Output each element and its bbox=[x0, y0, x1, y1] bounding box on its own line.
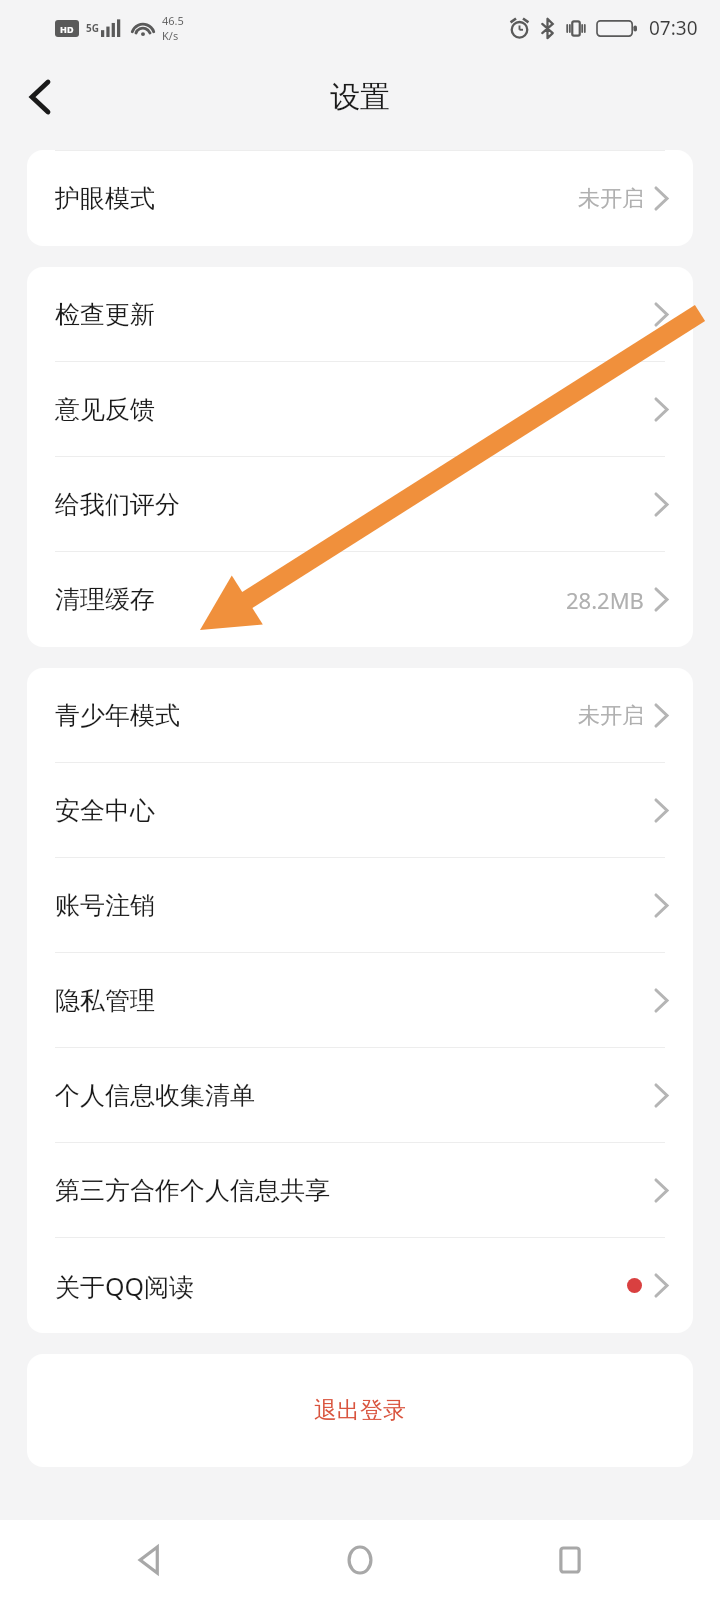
staticText: 给我们评分 bbox=[55, 489, 180, 520]
button[interactable]: 安全中心 bbox=[27, 763, 693, 858]
staticText: K/s bbox=[162, 28, 179, 43]
staticText: 28.2MB bbox=[566, 585, 644, 615]
button[interactable]: 意见反馈 bbox=[27, 362, 693, 457]
button[interactable]: 给我们评分 bbox=[27, 457, 693, 552]
button[interactable]: Home bbox=[330, 1530, 390, 1590]
staticText: 46.5 bbox=[162, 13, 184, 28]
button[interactable]: Back bbox=[8, 65, 72, 129]
button[interactable]: 退出登录 bbox=[27, 1354, 693, 1467]
button[interactable]: Back bbox=[120, 1530, 180, 1590]
staticText: 护眼模式 bbox=[55, 183, 155, 214]
staticText: 隐私管理 bbox=[55, 985, 155, 1016]
button[interactable]: 隐私管理 bbox=[27, 953, 693, 1048]
button[interactable]: 青少年模式 bbox=[27, 668, 693, 763]
staticText: 5G bbox=[86, 21, 99, 35]
staticText: 未开启 bbox=[578, 185, 644, 213]
button[interactable]: 个人信息收集清单 bbox=[27, 1048, 693, 1143]
button[interactable]: 关于QQ阅读 bbox=[27, 1238, 693, 1333]
button[interactable]: 护眼模式 bbox=[27, 151, 693, 246]
staticText: 未开启 bbox=[578, 702, 644, 730]
button[interactable]: 第三方合作个人信息共享 bbox=[27, 1143, 693, 1238]
button[interactable]: 检查更新 bbox=[27, 267, 693, 362]
staticText: 退出登录 bbox=[314, 1396, 406, 1425]
button[interactable]: Recent apps bbox=[540, 1530, 600, 1590]
staticText: 设置 bbox=[330, 78, 390, 116]
staticText: 清理缓存 bbox=[55, 584, 155, 615]
staticText: 青少年模式 bbox=[55, 700, 180, 731]
staticText: 意见反馈 bbox=[55, 394, 155, 425]
staticText: 个人信息收集清单 bbox=[55, 1080, 255, 1111]
staticText: 关于QQ阅读 bbox=[55, 1269, 195, 1303]
button[interactable]: 账号注销 bbox=[27, 858, 693, 953]
button[interactable]: 清理缓存 bbox=[27, 552, 693, 647]
staticText: 检查更新 bbox=[55, 299, 155, 330]
staticText: 第三方合作个人信息共享 bbox=[55, 1175, 330, 1206]
staticText: 安全中心 bbox=[55, 795, 155, 826]
staticText: 07:30 bbox=[649, 15, 698, 41]
staticText: 账号注销 bbox=[55, 890, 155, 921]
staticText: HD bbox=[60, 23, 74, 35]
